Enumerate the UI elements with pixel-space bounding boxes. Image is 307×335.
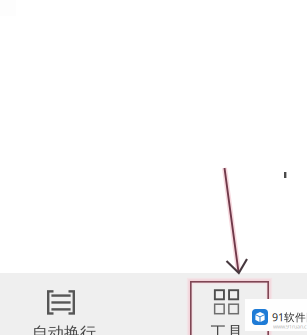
staticText: 工具 — [209, 322, 243, 335]
staticText: www.91ruan.com — [273, 323, 307, 330]
staticText: 自动换行 — [32, 323, 96, 335]
staticText: 91软件园 — [272, 310, 307, 324]
button[interactable]: 工具 — [187, 273, 266, 335]
button[interactable]: 自动换行 — [0, 273, 122, 335]
